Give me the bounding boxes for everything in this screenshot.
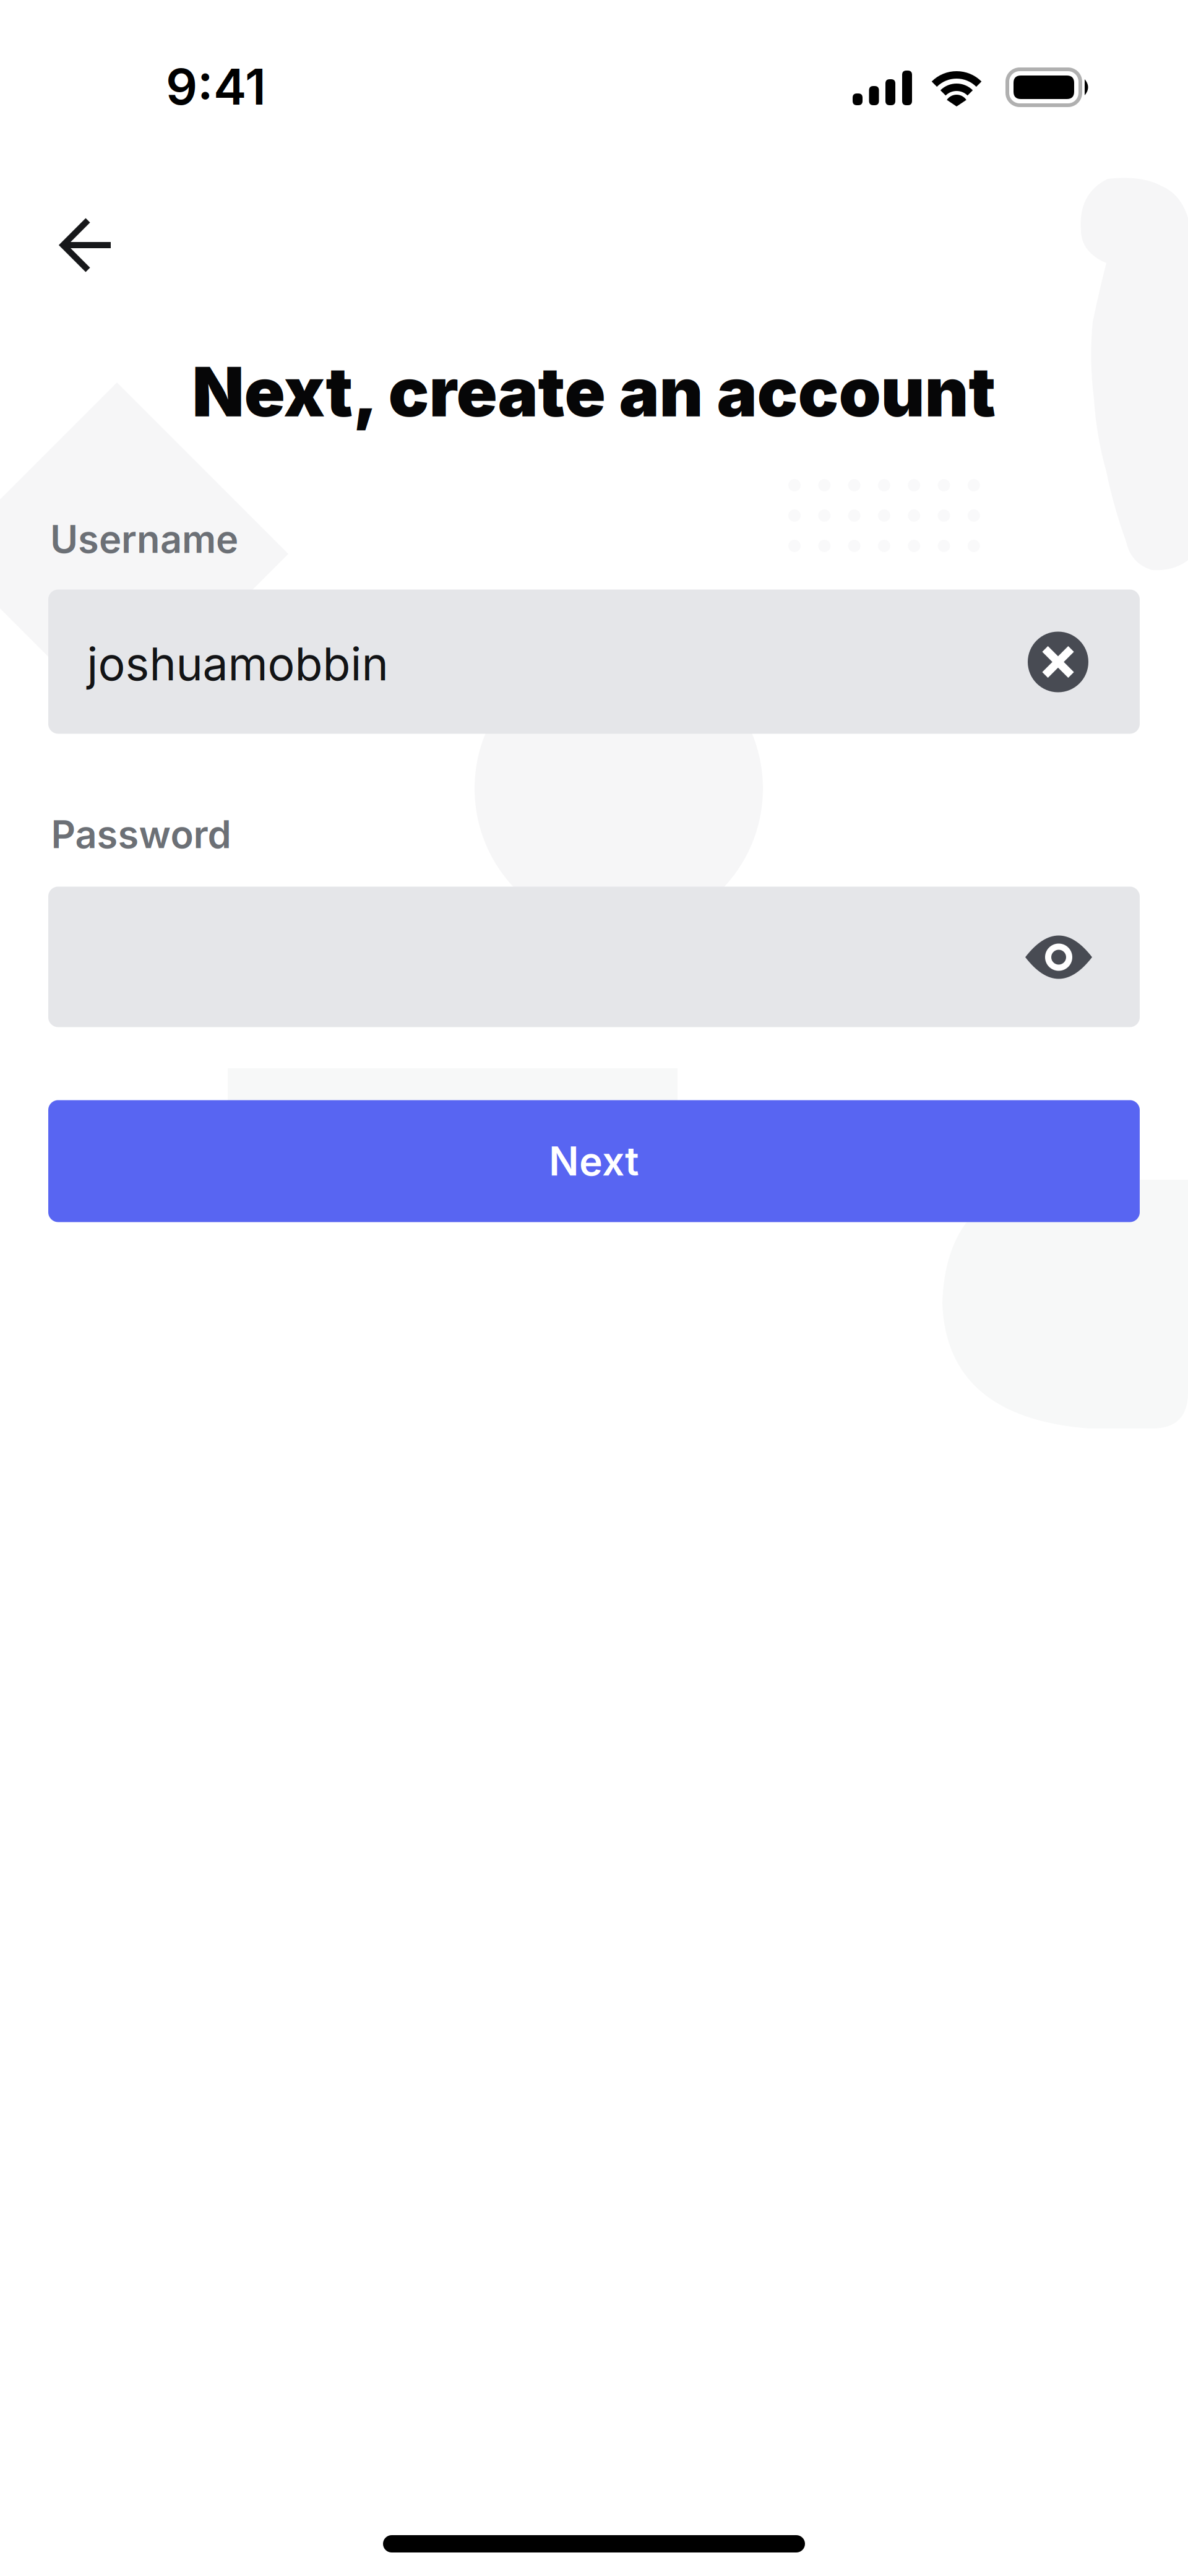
staticText: Password xyxy=(51,812,231,857)
button[interactable]: Next xyxy=(48,1100,1140,1222)
staticText: Next, create an account xyxy=(192,352,996,432)
button[interactable]: Show password xyxy=(1020,925,1097,989)
staticText: 9:41 xyxy=(166,57,266,116)
button[interactable]: Clear username xyxy=(1028,632,1088,692)
button[interactable]: Back xyxy=(38,199,131,292)
staticText: joshuamobbin xyxy=(87,637,388,691)
staticText: Username xyxy=(50,517,238,561)
staticText: Next xyxy=(549,1138,639,1184)
